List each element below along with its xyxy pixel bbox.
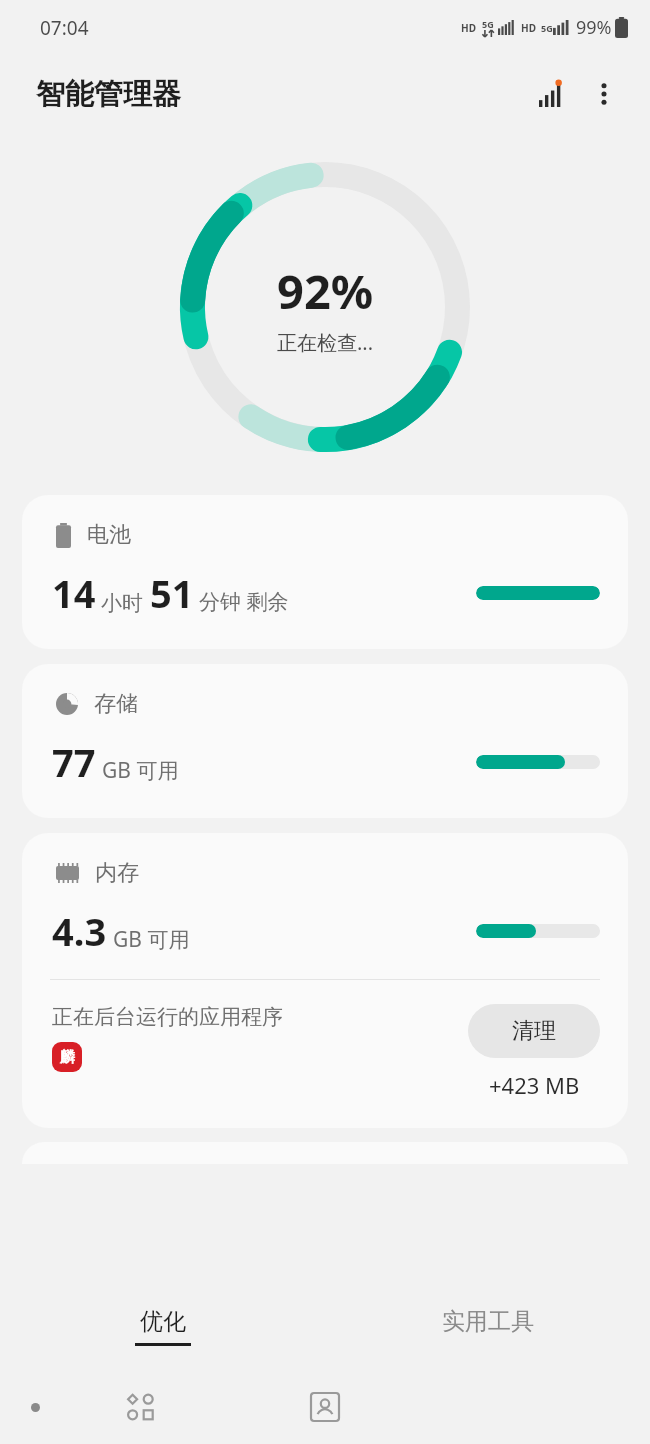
staticText: HD (521, 21, 536, 35)
staticText: 内存 (95, 859, 139, 887)
staticText: 92% (277, 259, 374, 323)
staticText: 14 (52, 567, 96, 619)
staticText: 5G (541, 22, 553, 34)
staticText: 智能管理器 (36, 76, 181, 113)
staticText: 5G (482, 18, 494, 30)
staticText: 正在后台运行的应用程序 (52, 1004, 283, 1030)
button[interactable]: 实用工具 (325, 1282, 650, 1370)
button[interactable]: 优化 (0, 1282, 325, 1370)
staticText: 77 (52, 736, 96, 788)
staticText: 99% (576, 15, 612, 40)
staticText: 存储 (94, 690, 138, 718)
staticText: GB 可用 (102, 756, 179, 785)
staticText: +423 MB (489, 1070, 580, 1100)
staticText: 清理 (512, 1017, 556, 1045)
staticText: GB 可用 (113, 925, 190, 954)
staticText: 麟 (60, 1048, 75, 1067)
button[interactable]: 电池 (22, 495, 628, 649)
staticText: 51 (150, 567, 194, 619)
button[interactable]: 更多选项 (578, 68, 630, 120)
staticText: 实用工具 (442, 1307, 534, 1336)
staticText: 电池 (87, 521, 131, 549)
button[interactable]: 内存 (22, 833, 628, 1128)
staticText: 4.3 (52, 905, 107, 957)
button[interactable]: 使用统计 (526, 68, 578, 120)
button[interactable]: 存储 (22, 664, 628, 818)
button[interactable]: 清理 (468, 1004, 600, 1058)
staticText: 小时 (101, 590, 143, 616)
staticText: 正在检查... (277, 329, 374, 356)
staticText: 分钟 剩余 (199, 587, 289, 616)
button[interactable]: 返回 (20, 1392, 50, 1422)
staticText: 优化 (140, 1307, 186, 1336)
staticText: 07:04 (40, 15, 89, 41)
button[interactable]: 最近任务 (112, 1378, 170, 1436)
button[interactable]: 联系人 (296, 1378, 354, 1436)
staticText: HD (461, 21, 476, 35)
